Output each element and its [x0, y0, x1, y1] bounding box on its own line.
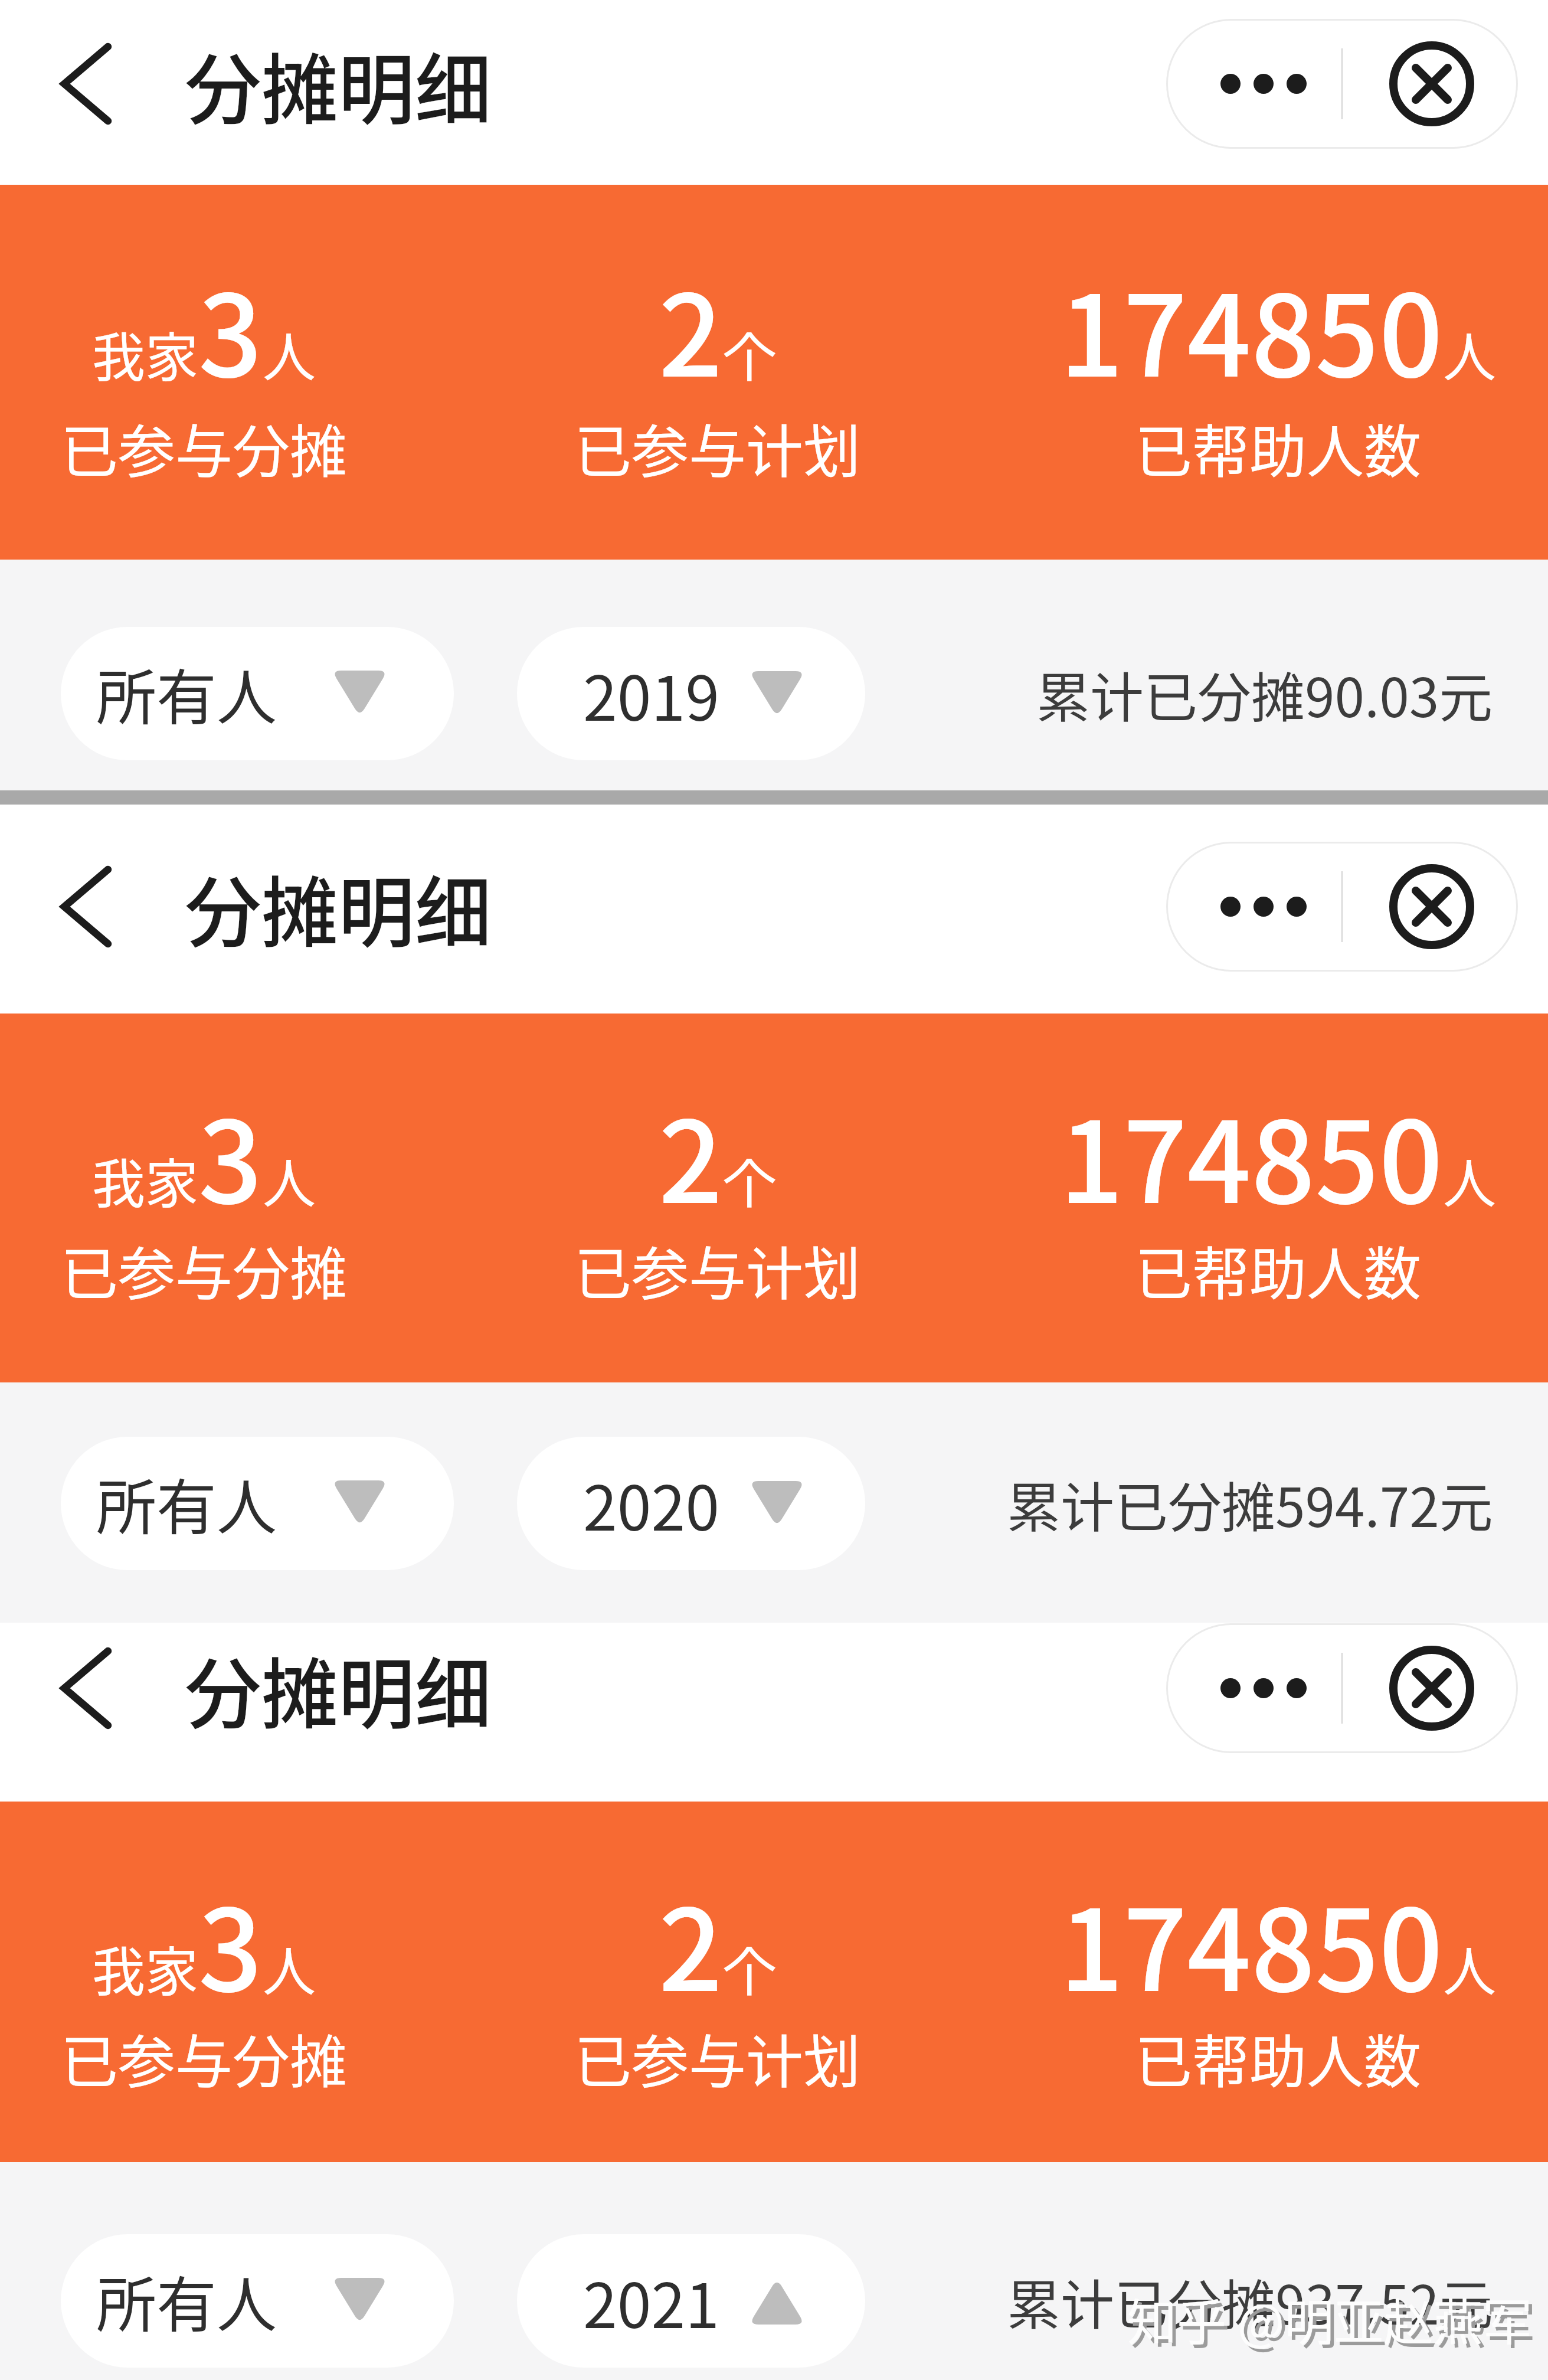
- staticText: 已参与分摊: [61, 2016, 347, 2098]
- staticText: 174850: [1059, 1861, 1443, 2023]
- staticText: 人: [263, 315, 316, 392]
- staticText: 分摊明细: [185, 1633, 492, 1744]
- staticText: 知乎 @明亚赵燕军: [1127, 2283, 1533, 2355]
- staticText: 2: [659, 247, 723, 409]
- staticText: 2021: [583, 2257, 719, 2346]
- staticText: 所有人: [96, 650, 277, 737]
- button[interactable]: [50, 34, 120, 134]
- staticText: 人: [263, 1930, 316, 2006]
- staticText: 我家: [92, 315, 198, 392]
- button[interactable]: [1166, 19, 1518, 149]
- staticText: 已帮助人数: [1135, 2016, 1421, 2098]
- button[interactable]: [50, 856, 120, 957]
- staticText: 3: [198, 1073, 263, 1235]
- staticText: 人: [263, 1142, 316, 1218]
- staticText: 所有人: [96, 2257, 277, 2345]
- staticText: 我家: [92, 1142, 198, 1218]
- button[interactable]: [1166, 842, 1518, 972]
- staticText: 已参与计划: [574, 406, 860, 488]
- staticText: 人: [1443, 1930, 1496, 2006]
- staticText: 174850: [1059, 247, 1443, 409]
- button[interactable]: [50, 1638, 120, 1738]
- button[interactable]: [1166, 1623, 1518, 1753]
- staticText: 3: [198, 1861, 263, 2023]
- staticText: 个: [723, 1142, 776, 1218]
- staticText: 累计已分摊937.52元: [1007, 2262, 1493, 2340]
- button[interactable]: 2021: [517, 2234, 865, 2368]
- staticText: 知乎 @明亚赵燕军: [1131, 2287, 1536, 2359]
- staticText: 已参与计划: [574, 1228, 860, 1310]
- staticText: 分摊明细: [185, 28, 492, 139]
- staticText: 所有人: [96, 1460, 277, 1547]
- staticText: 2019: [583, 649, 719, 738]
- staticText: 我家: [92, 1930, 198, 2006]
- staticText: 已帮助人数: [1135, 1228, 1421, 1310]
- staticText: 累计已分摊90.03元: [1036, 655, 1493, 733]
- staticText: 人: [1443, 1142, 1496, 1218]
- staticText: 人: [1443, 315, 1496, 392]
- staticText: 2020: [583, 1459, 719, 1548]
- staticText: 个: [723, 315, 776, 392]
- staticText: 已参与分摊: [61, 1228, 347, 1310]
- staticText: 3: [198, 247, 263, 409]
- staticText: 累计已分摊594.72元: [1007, 1464, 1493, 1542]
- staticText: 已参与分摊: [61, 406, 347, 488]
- staticText: 已参与计划: [574, 2016, 860, 2098]
- button[interactable]: 所有人: [61, 627, 454, 760]
- button[interactable]: 2019: [517, 627, 865, 760]
- button[interactable]: 2020: [517, 1437, 865, 1570]
- staticText: 174850: [1059, 1073, 1443, 1235]
- staticText: 分摊明细: [185, 851, 492, 962]
- staticText: 个: [723, 1930, 776, 2006]
- button[interactable]: 所有人: [61, 2234, 454, 2368]
- staticText: 已帮助人数: [1135, 406, 1421, 488]
- button[interactable]: 所有人: [61, 1437, 454, 1570]
- staticText: 2: [659, 1861, 723, 2023]
- staticText: 2: [659, 1073, 723, 1235]
